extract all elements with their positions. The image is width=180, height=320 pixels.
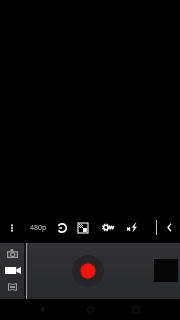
staticText: 480p — [30, 223, 47, 233]
button[interactable]: Flash off — [120, 212, 144, 243]
button[interactable]: Recent apps — [126, 299, 146, 320]
button[interactable]: Color effect — [72, 212, 94, 243]
button[interactable]: Panorama mode — [0, 279, 25, 295]
button[interactable]: Photo mode — [0, 245, 25, 261]
button[interactable]: More options — [0, 212, 24, 243]
button[interactable]: Back — [32, 299, 52, 320]
button[interactable]: Home — [80, 299, 100, 320]
button[interactable]: Scene mode — [51, 212, 73, 243]
button[interactable]: Video mode — [0, 262, 25, 278]
button[interactable]: Hide controls — [159, 212, 180, 243]
button[interactable]: White balance — [96, 212, 120, 243]
button[interactable]: 480p — [24, 212, 52, 243]
button[interactable]: Record — [72, 255, 104, 287]
